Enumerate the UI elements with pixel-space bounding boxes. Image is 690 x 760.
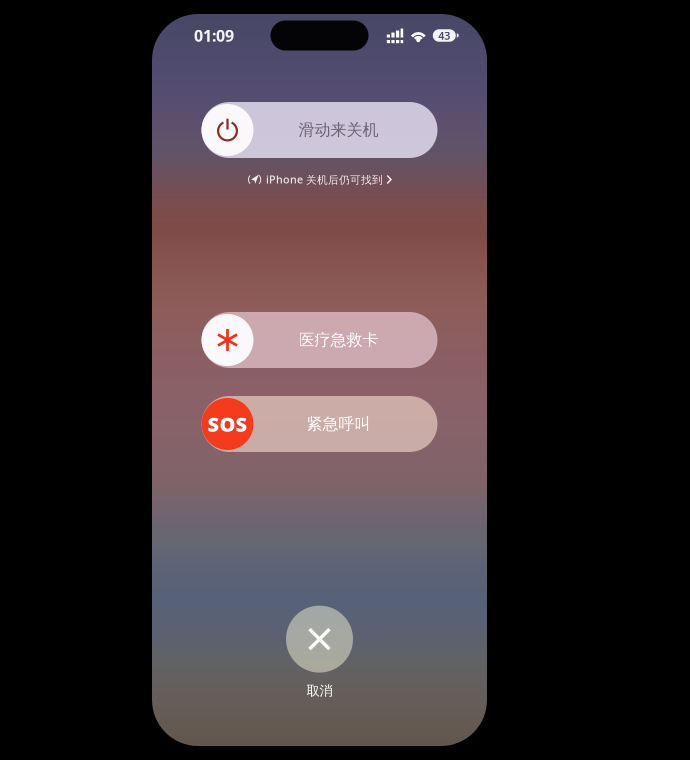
staticText: 01:09: [194, 25, 234, 46]
staticText: 取消: [306, 683, 332, 699]
button[interactable]: 滑动来关机: [201, 102, 437, 158]
staticText: 医疗急救卡: [298, 330, 378, 350]
button[interactable]: 取消: [286, 606, 353, 699]
staticText: 滑动来关机: [298, 120, 378, 140]
staticText: iPhone 关机后仍可找到: [266, 172, 383, 187]
button[interactable]: 医疗急救卡: [201, 312, 437, 368]
staticText: 紧急呼叫: [306, 414, 370, 434]
staticText: 43: [438, 28, 450, 43]
button[interactable]: iPhone 关机后仍可找到: [246, 172, 393, 187]
staticText: SOS: [207, 411, 247, 437]
button[interactable]: SOS: [201, 396, 437, 452]
